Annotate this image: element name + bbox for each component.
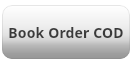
staticText: Book Order COD	[8, 23, 124, 42]
button[interactable]: Book Order COD	[2, 5, 130, 59]
